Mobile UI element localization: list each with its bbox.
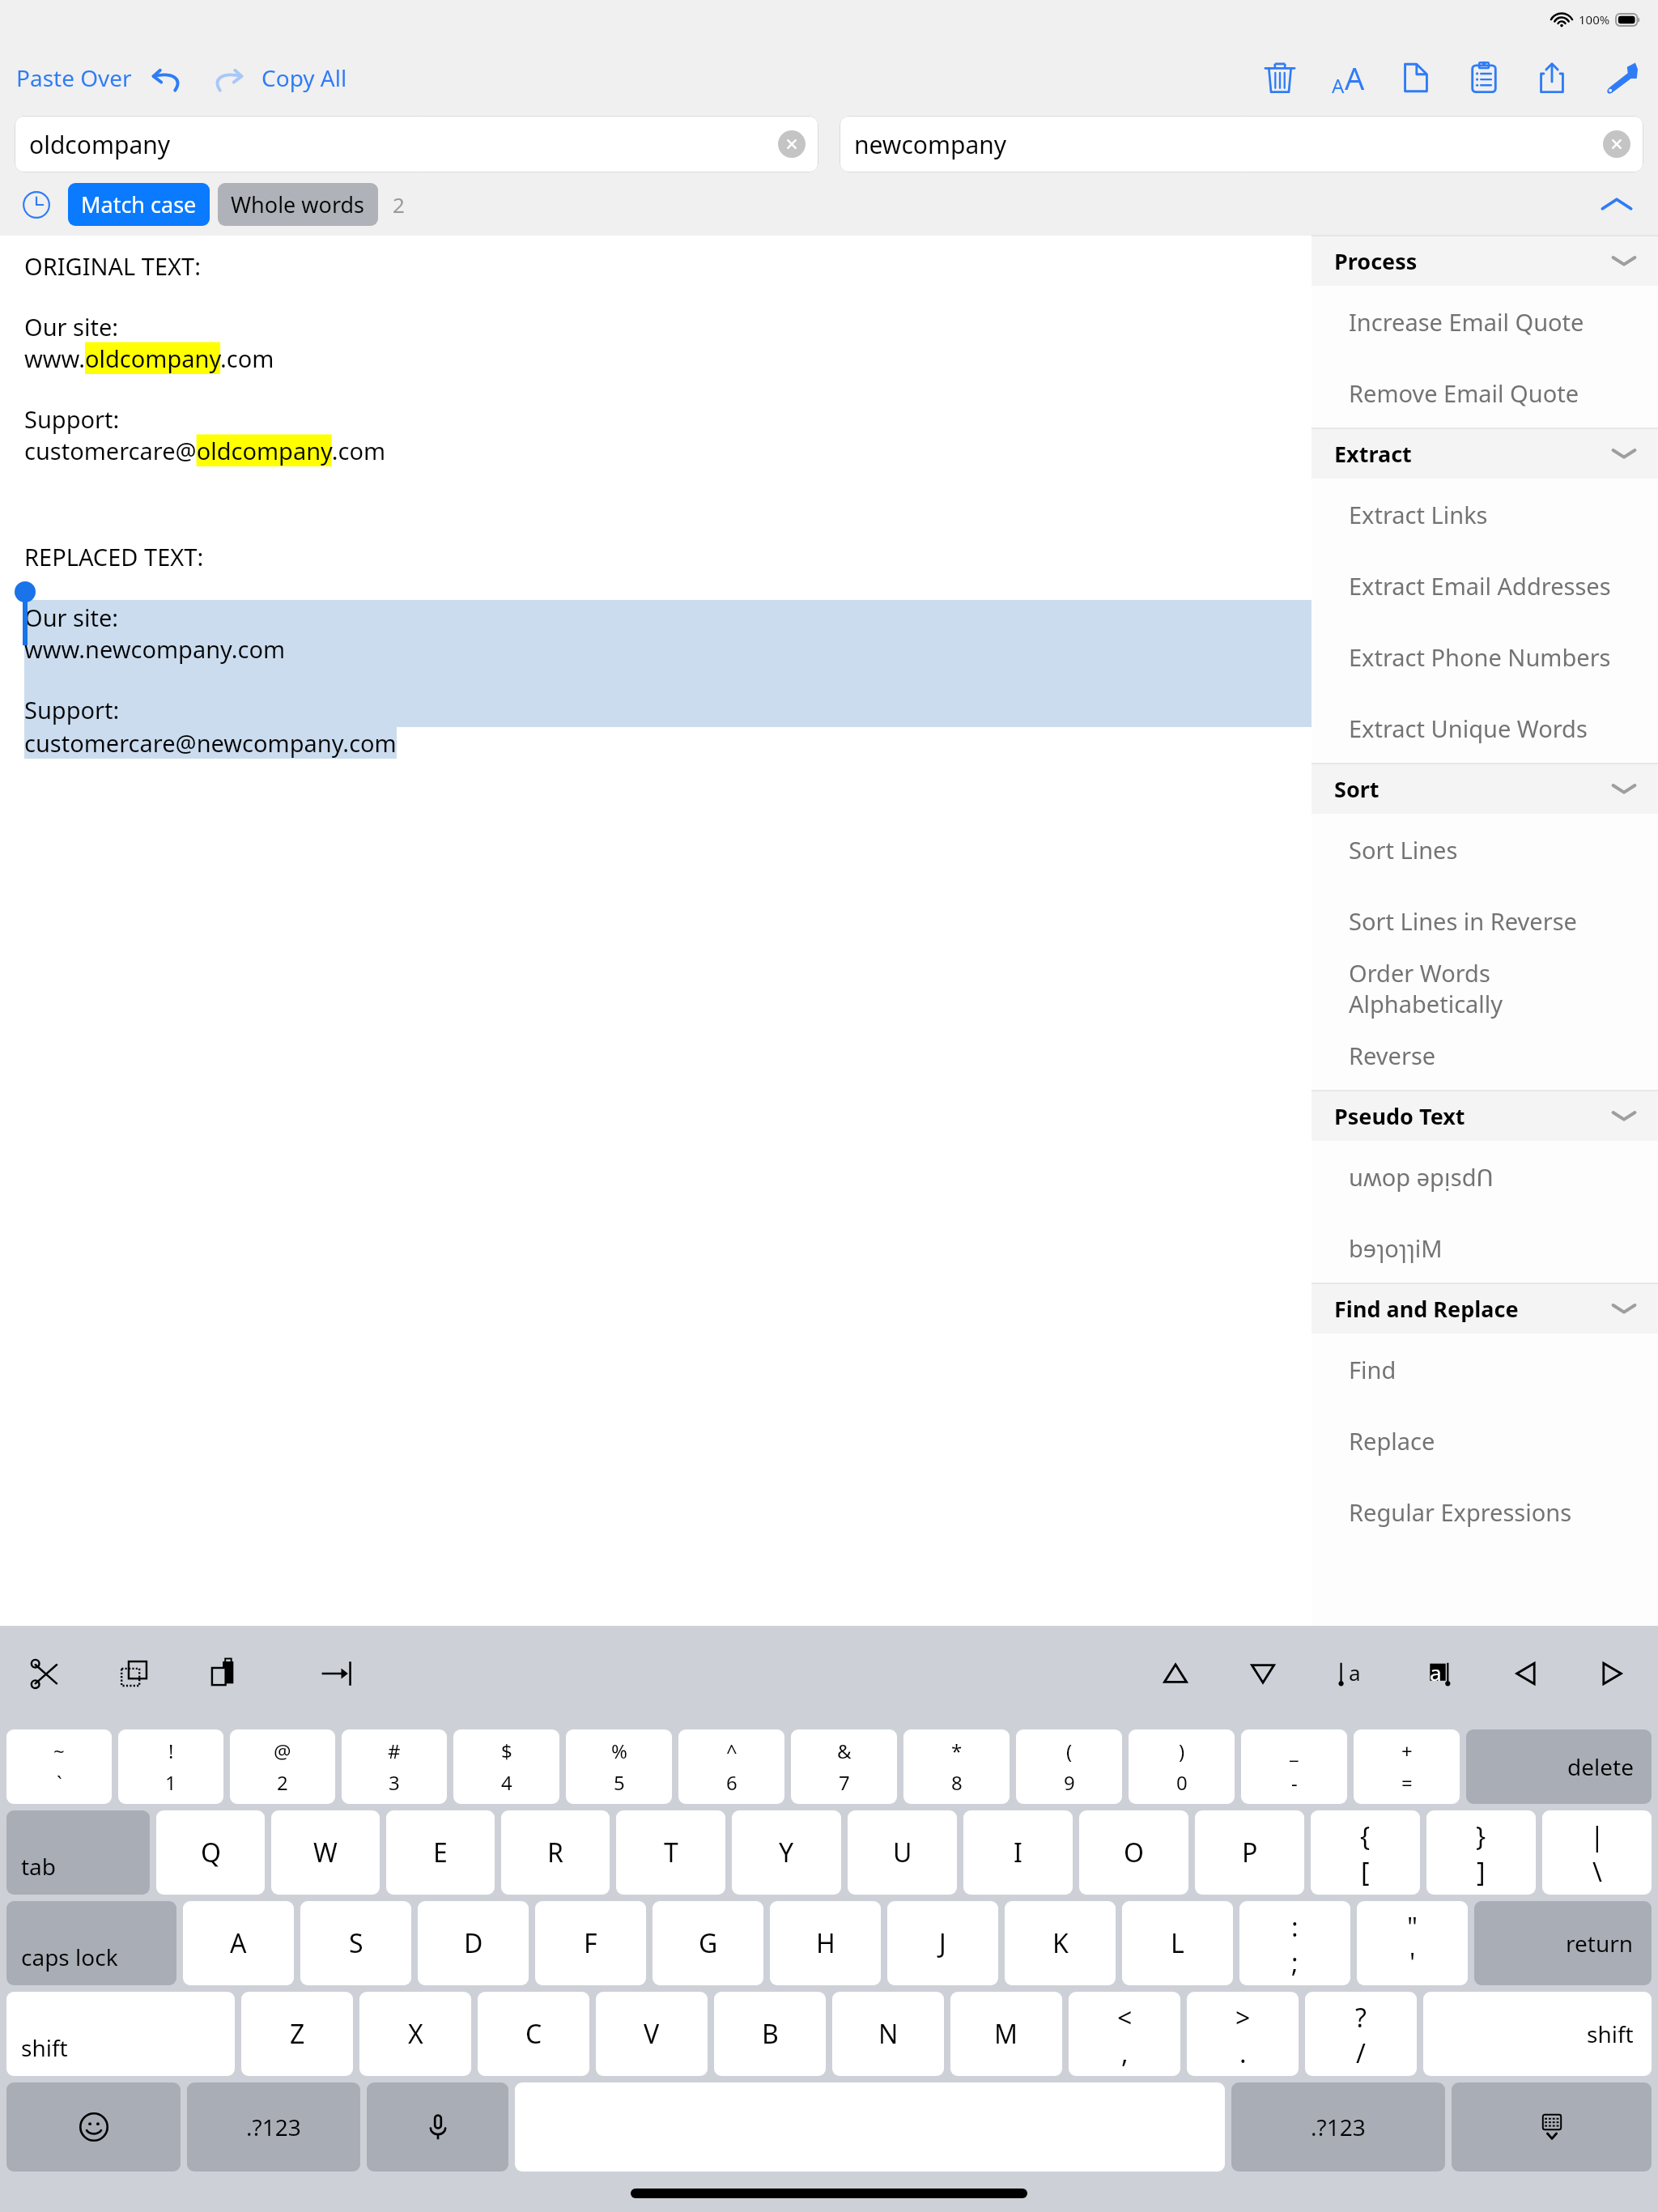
button[interactable]: ) bbox=[1129, 1729, 1235, 1804]
button[interactable]: Q bbox=[156, 1810, 265, 1895]
button[interactable]: Extract Links bbox=[1312, 479, 1658, 550]
button[interactable]: oldcompany bbox=[15, 116, 818, 172]
button[interactable]: P bbox=[1195, 1810, 1304, 1895]
button[interactable]: Find and Replace bbox=[1312, 1283, 1658, 1334]
button[interactable]: Sort Lines bbox=[1312, 814, 1658, 885]
button[interactable]: caps lock bbox=[6, 1901, 176, 1985]
button[interactable]: Undo bbox=[147, 57, 189, 99]
button[interactable]: Cut bbox=[19, 1648, 71, 1699]
button[interactable]: ( bbox=[1016, 1729, 1122, 1804]
button[interactable]: Paste Over bbox=[13, 57, 135, 98]
button[interactable]: Emoji bbox=[6, 2082, 181, 2172]
button[interactable]: < bbox=[1069, 1992, 1180, 2076]
button[interactable]: H bbox=[770, 1901, 881, 1985]
button[interactable]: E bbox=[386, 1810, 495, 1895]
button[interactable]: New document bbox=[1392, 54, 1439, 101]
button[interactable]: ^ bbox=[678, 1729, 784, 1804]
button[interactable]: Move down bbox=[1237, 1648, 1289, 1699]
button[interactable]: { bbox=[1311, 1810, 1420, 1895]
button[interactable]: Settings bbox=[1596, 54, 1643, 101]
button[interactable]: U bbox=[848, 1810, 957, 1895]
button[interactable]: Copy bbox=[108, 1648, 160, 1699]
button[interactable]: Y bbox=[732, 1810, 841, 1895]
button[interactable]: ~ bbox=[6, 1729, 112, 1804]
button[interactable]: F bbox=[535, 1901, 646, 1985]
button[interactable]: : bbox=[1239, 1901, 1350, 1985]
button[interactable]: $ bbox=[453, 1729, 559, 1804]
button[interactable]: & bbox=[791, 1729, 897, 1804]
button[interactable]: Move right bbox=[1587, 1648, 1639, 1699]
button[interactable]: shift bbox=[6, 1992, 235, 2076]
button[interactable]: V bbox=[596, 1992, 708, 2076]
button[interactable]: Text size bbox=[1324, 54, 1371, 101]
button[interactable]: bɘɿoɿɿiM bbox=[1312, 1212, 1658, 1283]
button[interactable]: S bbox=[300, 1901, 411, 1985]
button[interactable]: Hide keyboard bbox=[1452, 2082, 1652, 2172]
button[interactable]: Copy All bbox=[258, 57, 351, 98]
button[interactable]: Process bbox=[1312, 236, 1658, 286]
button[interactable]: Move up bbox=[1150, 1648, 1201, 1699]
button[interactable]: " bbox=[1357, 1901, 1468, 1985]
button[interactable]: M bbox=[950, 1992, 1062, 2076]
button[interactable]: B bbox=[714, 1992, 826, 2076]
button[interactable]: Reverse bbox=[1312, 1019, 1658, 1091]
button[interactable]: uʍop ǝpᴉsdՈ bbox=[1312, 1141, 1658, 1212]
button[interactable]: Extract bbox=[1312, 428, 1658, 479]
button[interactable]: Clear bbox=[778, 130, 806, 158]
button[interactable]: X bbox=[359, 1992, 471, 2076]
button[interactable]: @ bbox=[230, 1729, 335, 1804]
button[interactable]: % bbox=[566, 1729, 672, 1804]
button[interactable]: Sort Lines in Reverse bbox=[1312, 885, 1658, 956]
button[interactable]: Replace bbox=[1312, 1405, 1658, 1476]
button[interactable]: Match case bbox=[68, 183, 210, 226]
button[interactable]: } bbox=[1426, 1810, 1536, 1895]
button[interactable]: Select bbox=[1412, 1648, 1464, 1699]
button[interactable]: History bbox=[16, 185, 57, 225]
button[interactable]: D bbox=[418, 1901, 529, 1985]
button[interactable]: Move left bbox=[1499, 1648, 1551, 1699]
button[interactable]: _ bbox=[1241, 1729, 1347, 1804]
button[interactable]: Delete bbox=[1256, 54, 1303, 101]
button[interactable]: T bbox=[616, 1810, 725, 1895]
button[interactable]: O bbox=[1079, 1810, 1188, 1895]
button[interactable]: .?123 bbox=[1231, 2082, 1445, 2172]
button[interactable]: Order Words Alphabetically bbox=[1312, 956, 1658, 1019]
button[interactable]: Share bbox=[1528, 54, 1575, 101]
button[interactable]: + bbox=[1354, 1729, 1460, 1804]
button[interactable]: R bbox=[501, 1810, 610, 1895]
button[interactable]: J bbox=[887, 1901, 998, 1985]
button[interactable]: Dictation bbox=[367, 2082, 508, 2172]
button[interactable]: > bbox=[1187, 1992, 1299, 2076]
button[interactable]: * bbox=[903, 1729, 1010, 1804]
button[interactable]: W bbox=[271, 1810, 380, 1895]
button[interactable]: I bbox=[963, 1810, 1073, 1895]
button[interactable]: Extract Email Addresses bbox=[1312, 550, 1658, 621]
button[interactable]: C bbox=[478, 1992, 589, 2076]
button[interactable]: Remove Email Quote bbox=[1312, 357, 1658, 428]
button[interactable]: Increase Email Quote bbox=[1312, 286, 1658, 357]
button[interactable]: shift bbox=[1423, 1992, 1652, 2076]
button[interactable]: Collapse bbox=[1595, 182, 1639, 226]
button[interactable]: newcompany bbox=[840, 116, 1643, 172]
button[interactable]: delete bbox=[1466, 1729, 1652, 1804]
button[interactable]: Extract Phone Numbers bbox=[1312, 621, 1658, 692]
button[interactable]: Extract Unique Words bbox=[1312, 692, 1658, 764]
button[interactable]: Paste bbox=[198, 1648, 249, 1699]
button[interactable]: ! bbox=[118, 1729, 223, 1804]
button[interactable]: | bbox=[1542, 1810, 1652, 1895]
button[interactable]: G bbox=[653, 1901, 763, 1985]
button[interactable]: Pseudo Text bbox=[1312, 1091, 1658, 1141]
button[interactable]: N bbox=[832, 1992, 944, 2076]
button[interactable]: # bbox=[342, 1729, 447, 1804]
button[interactable]: return bbox=[1474, 1901, 1652, 1985]
button[interactable]: K bbox=[1005, 1901, 1116, 1985]
button[interactable]: Cursor start bbox=[1324, 1648, 1376, 1699]
button[interactable]: Sort bbox=[1312, 764, 1658, 814]
button[interactable]: Z bbox=[241, 1992, 353, 2076]
button[interactable]: A bbox=[183, 1901, 294, 1985]
button[interactable]: .?123 bbox=[187, 2082, 360, 2172]
button[interactable]: Find bbox=[1312, 1334, 1658, 1405]
button[interactable]: Clipboard bbox=[1460, 54, 1507, 101]
button[interactable]: ? bbox=[1305, 1992, 1417, 2076]
button[interactable]: L bbox=[1122, 1901, 1233, 1985]
